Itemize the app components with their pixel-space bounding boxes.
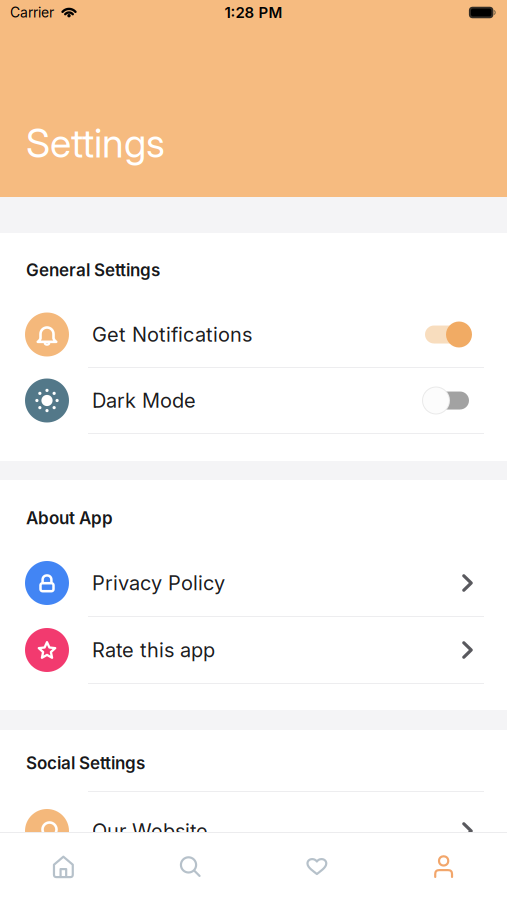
button[interactable]: Dark Mode xyxy=(0,368,507,433)
staticText: About App xyxy=(26,508,113,528)
button[interactable]: Favorites xyxy=(253,833,380,900)
staticText: Our Website xyxy=(92,819,208,843)
button[interactable]: Privacy Policy xyxy=(0,550,507,616)
button[interactable]: Our Website xyxy=(0,798,507,864)
button[interactable]: Profile xyxy=(380,833,507,900)
button[interactable]: Search xyxy=(127,833,254,900)
button[interactable]: Home xyxy=(0,833,127,900)
staticText: Rate this app xyxy=(92,638,215,662)
staticText: Privacy Policy xyxy=(92,571,225,595)
staticText: Settings xyxy=(26,120,165,167)
staticText: Social Settings xyxy=(26,753,145,773)
staticText: General Settings xyxy=(26,260,160,280)
button[interactable]: Get Notifications xyxy=(422,320,507,348)
button[interactable]: Dark Mode xyxy=(422,386,507,414)
staticText: Carrier xyxy=(10,4,54,21)
staticText: 1:28 PM xyxy=(224,3,282,21)
button[interactable]: Get Notifications xyxy=(0,302,507,367)
staticText: Get Notifications xyxy=(92,322,252,347)
staticText: Dark Mode xyxy=(92,388,196,413)
button[interactable]: Rate this app xyxy=(0,617,507,683)
